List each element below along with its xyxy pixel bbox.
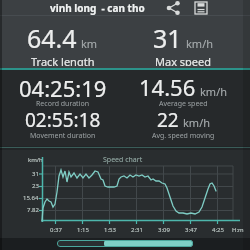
staticText: 2:31 <box>131 226 143 234</box>
staticText: 1:53 <box>104 226 116 234</box>
staticText: Track length <box>31 54 95 66</box>
staticText: 15.64 <box>23 194 39 202</box>
staticText: Speed chart <box>103 155 143 165</box>
button[interactable] <box>190 0 212 16</box>
button[interactable] <box>57 240 193 247</box>
staticText: 31 <box>153 21 182 49</box>
staticText: Max speed <box>155 54 212 66</box>
staticText: 04:25:19 <box>19 73 107 97</box>
staticText: 3:09 <box>158 226 170 234</box>
staticText: H:m <box>232 226 244 234</box>
staticText: 0:37 <box>50 226 62 234</box>
staticText: Movement duration <box>30 131 96 141</box>
staticText: km/h <box>186 36 214 51</box>
staticText: 31 <box>32 170 39 178</box>
staticText: 1:15 <box>77 226 89 234</box>
staticText: vinh long - can tho <box>50 1 145 15</box>
staticText: 64.4 <box>27 21 77 49</box>
staticText: Record duration <box>36 99 89 109</box>
staticText: km <box>81 36 98 51</box>
staticText: km/h <box>183 115 211 130</box>
staticText: Average speed <box>159 99 208 109</box>
staticText: 3:47 <box>185 226 197 234</box>
staticText: Avg. speed moving <box>152 131 215 141</box>
staticText: km/h <box>200 84 228 99</box>
button[interactable] <box>162 0 184 16</box>
staticText: 7.82 <box>27 206 39 214</box>
staticText: 23 <box>32 182 39 190</box>
staticText: 22 <box>157 107 179 130</box>
staticText: 4:25 <box>212 226 224 234</box>
staticText: km/h <box>28 156 43 164</box>
staticText: 14.56 <box>139 72 196 96</box>
staticText: 02:55:18 <box>25 107 101 130</box>
